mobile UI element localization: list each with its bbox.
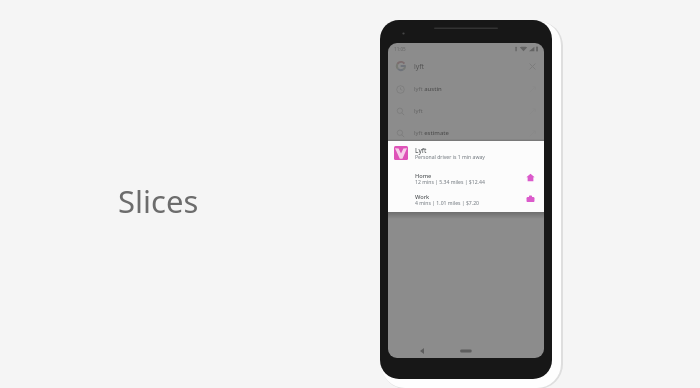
staticText: 11:05	[394, 46, 406, 52]
staticText: lyft austin	[414, 85, 442, 93]
other: Work	[526, 194, 535, 203]
button[interactable]: lyft estimate	[388, 122, 544, 144]
staticText: 12 mins | 5.34 miles | $12.44	[415, 179, 485, 186]
button[interactable]: lyft austin	[388, 78, 544, 100]
other: Clear search	[529, 63, 536, 70]
staticText: lyft estimate	[414, 129, 449, 137]
other: Home	[526, 173, 535, 182]
staticText: 4 mins | 1.01 miles | $7.20	[415, 200, 479, 207]
button[interactable]: Home	[388, 168, 544, 189]
other: Google	[396, 61, 406, 71]
staticText: Work	[415, 193, 430, 201]
staticText: lyft	[414, 62, 425, 71]
button[interactable]: Google	[388, 55, 544, 77]
staticText: Home	[415, 172, 432, 180]
staticText: Lyft	[415, 146, 427, 155]
button[interactable]: Work	[388, 189, 544, 210]
staticText: Personal driver is 1 min away	[415, 154, 485, 161]
staticText: lyft	[414, 107, 423, 115]
staticText: Slices	[118, 180, 199, 222]
button[interactable]: Lyft	[388, 141, 544, 166]
